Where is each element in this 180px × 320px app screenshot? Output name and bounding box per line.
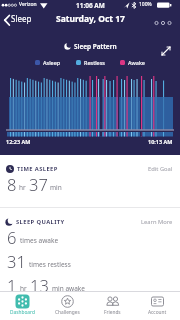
staticText: 11:06 AM [76,1,105,10]
button[interactable]: Dashboard [0,292,45,316]
button[interactable] [150,16,176,30]
staticText: hr [20,284,27,293]
staticText: times awake [20,236,59,245]
staticText: 10:13 AM [148,138,173,145]
staticText: 100% [139,1,152,8]
staticText: min [50,183,62,192]
staticText: min awake [52,284,86,293]
button[interactable]: Friends [90,292,135,316]
staticText: TIME ASLEEP [17,165,58,173]
staticText: Friends [104,309,121,316]
button[interactable]: Learn More [141,218,173,226]
staticText: Restless [84,59,105,66]
staticText: Awake [128,59,145,66]
button[interactable]: Challenges [45,292,90,316]
staticText: Sleep Pattern [74,42,117,51]
staticText: Edit Goal [148,165,173,173]
staticText: 37 [29,173,48,195]
staticText: hr [19,183,26,192]
staticText: 6 [7,226,17,248]
staticText: Learn More [141,218,173,226]
staticText: SLEEP QUALITY [16,218,65,226]
staticText: 13 [30,274,49,296]
button[interactable]: Edit Goal [148,165,173,173]
staticText: Dashboard [10,309,35,316]
staticText: Account [148,309,167,316]
button[interactable] [156,42,176,60]
staticText: Asleep [43,59,61,66]
staticText: 8 [7,173,17,195]
staticText: Saturday, Oct 17 [56,13,125,25]
staticText: 31 [7,250,26,272]
button[interactable]: Account [135,292,180,316]
staticText: Challenges [55,309,80,316]
staticText: 1 [7,274,17,296]
staticText: 12:23 AM [6,138,31,145]
staticText: times restless [29,260,71,269]
staticText: Verizon [19,1,37,8]
button[interactable]: Sleep [2,11,23,22]
staticText: Sleep [11,13,32,24]
